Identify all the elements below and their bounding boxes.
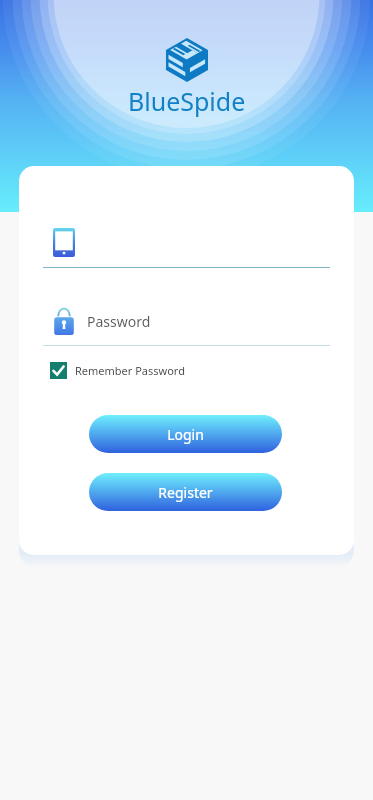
- other: Phone number: [53, 228, 75, 257]
- button[interactable]: Register: [89, 473, 282, 511]
- button[interactable]: Remember Password: [50, 362, 185, 379]
- staticText: Login: [167, 425, 204, 444]
- button[interactable]: Login: [89, 415, 282, 453]
- other: Password: [53, 306, 75, 335]
- staticText: Remember Password: [75, 363, 185, 378]
- staticText: Password: [87, 312, 151, 331]
- staticText: BlueSpide: [128, 84, 246, 118]
- staticText: Register: [158, 483, 213, 502]
